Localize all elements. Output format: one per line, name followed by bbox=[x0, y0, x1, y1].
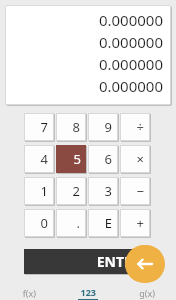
staticText: ÷ bbox=[136, 118, 144, 136]
button[interactable]: − bbox=[121, 178, 149, 204]
staticText: 0 bbox=[40, 214, 48, 232]
button[interactable]: ÷ bbox=[121, 114, 149, 140]
button[interactable]: 123 bbox=[58, 285, 117, 300]
button[interactable]: ENTER bbox=[24, 249, 145, 274]
button[interactable]: + bbox=[121, 210, 149, 236]
button[interactable]: Backspace bbox=[125, 245, 165, 283]
button[interactable]: 0 bbox=[25, 210, 53, 236]
button[interactable]: 9 bbox=[89, 114, 117, 140]
staticText: 8 bbox=[72, 118, 80, 136]
staticText: 0.000000 bbox=[98, 54, 163, 74]
staticText: f(x) bbox=[22, 287, 36, 299]
button[interactable]: 0.000000 bbox=[6, 6, 170, 104]
staticText: 9 bbox=[104, 118, 112, 136]
button[interactable]: 4 bbox=[25, 146, 53, 172]
staticText: × bbox=[136, 150, 144, 168]
staticText: 1 bbox=[40, 182, 48, 200]
staticText: 2 bbox=[72, 182, 80, 200]
staticText: 6 bbox=[104, 150, 112, 168]
button[interactable]: 1 bbox=[25, 178, 53, 204]
button[interactable]: 5 bbox=[56, 145, 86, 173]
staticText: 5 bbox=[73, 150, 81, 168]
button[interactable]: 2 bbox=[57, 178, 85, 204]
button[interactable]: × bbox=[121, 146, 149, 172]
staticText: 0.000000 bbox=[98, 76, 163, 96]
staticText: 3 bbox=[104, 182, 112, 200]
button[interactable]: 8 bbox=[57, 114, 85, 140]
staticText: 0.000000 bbox=[98, 32, 163, 52]
staticText: . bbox=[76, 214, 80, 232]
staticText: 4 bbox=[40, 150, 48, 168]
staticText: 7 bbox=[40, 118, 48, 136]
staticText: 123 bbox=[80, 286, 96, 298]
button[interactable]: . bbox=[57, 210, 85, 236]
staticText: + bbox=[136, 214, 144, 232]
button[interactable]: g(x) bbox=[117, 285, 176, 300]
staticText: E bbox=[104, 214, 112, 232]
staticText: 0.000000 bbox=[98, 10, 163, 30]
button[interactable]: 3 bbox=[89, 178, 117, 204]
button[interactable]: f(x) bbox=[0, 285, 58, 300]
staticText: g(x) bbox=[139, 287, 155, 299]
staticText: ENTER bbox=[96, 252, 141, 271]
button[interactable]: 7 bbox=[25, 114, 53, 140]
button[interactable]: 6 bbox=[89, 146, 117, 172]
button[interactable]: E bbox=[89, 210, 117, 236]
staticText: − bbox=[136, 182, 144, 200]
